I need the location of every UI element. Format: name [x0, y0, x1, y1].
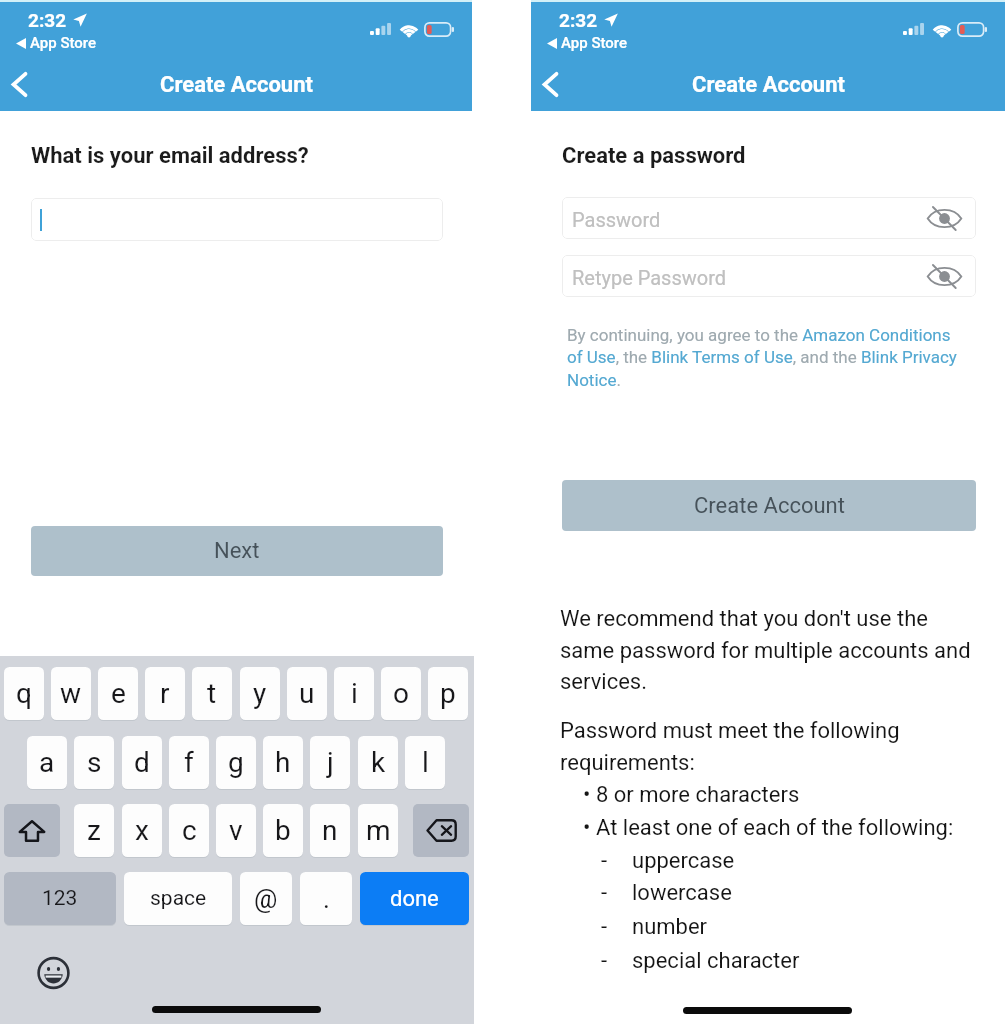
button[interactable]: z: [74, 804, 114, 857]
staticText: -: [601, 948, 608, 974]
staticText: q: [16, 677, 32, 710]
button[interactable]: e: [98, 667, 138, 720]
staticText: Retype Password: [572, 266, 727, 289]
staticText: •: [583, 815, 591, 841]
staticText: space: [150, 886, 207, 911]
staticText: special character: [632, 948, 800, 974]
staticText: number: [632, 914, 708, 940]
staticText: -: [601, 880, 608, 906]
button[interactable]: v: [216, 804, 256, 857]
staticText: o: [393, 677, 409, 710]
button[interactable]: Emoji keyboard: [37, 956, 70, 990]
button[interactable]: Show password: [920, 258, 968, 295]
staticText: c: [182, 814, 197, 847]
button[interactable]: Back: [0, 62, 38, 106]
staticText: uppercase: [632, 848, 735, 874]
staticText: i: [351, 677, 358, 710]
staticText: 2:32: [559, 9, 598, 31]
staticText: w: [60, 677, 82, 710]
button[interactable]: Backspace: [413, 804, 469, 857]
staticText: g: [228, 746, 244, 779]
button[interactable]: space: [124, 872, 232, 925]
button[interactable]: 123: [4, 872, 116, 925]
staticText: done: [390, 886, 439, 912]
staticText: -: [601, 914, 608, 940]
staticText: -: [601, 848, 608, 874]
button[interactable]: Retype Password: [562, 255, 976, 297]
staticText: We recommend that you don't use the same…: [560, 606, 978, 694]
button[interactable]: m: [358, 804, 398, 857]
staticText: z: [87, 814, 101, 847]
button[interactable]: q: [4, 667, 44, 720]
staticText: u: [299, 677, 315, 710]
staticText: x: [135, 814, 149, 847]
button[interactable]: r: [145, 667, 185, 720]
staticText: lowercase: [632, 880, 732, 906]
staticText: .: [323, 884, 330, 914]
button[interactable]: a: [27, 736, 67, 789]
button[interactable]: Back: [531, 62, 569, 106]
staticText: k: [371, 746, 386, 779]
staticText: s: [87, 746, 102, 779]
button[interactable]: b: [263, 804, 303, 857]
button[interactable]: f: [169, 736, 209, 789]
staticText: @: [254, 884, 278, 914]
staticText: Password must meet the following require…: [560, 718, 978, 775]
staticText: n: [322, 814, 338, 847]
staticText: App Store: [561, 34, 628, 52]
staticText: 2:32: [28, 9, 67, 31]
button[interactable]: h: [263, 736, 303, 789]
staticText: p: [440, 677, 456, 710]
button[interactable]: @: [240, 872, 292, 925]
button[interactable]: y: [240, 667, 280, 720]
button[interactable]: d: [122, 736, 162, 789]
button[interactable]: Password: [562, 197, 976, 239]
staticText: App Store: [30, 34, 97, 52]
staticText: Password: [572, 208, 661, 231]
staticText: Next: [214, 538, 260, 564]
staticText: What is your email address?: [31, 143, 309, 169]
button[interactable]: done: [360, 872, 469, 925]
button[interactable]: t: [192, 667, 232, 720]
button[interactable]: Show password: [920, 200, 968, 237]
button[interactable]: k: [358, 736, 398, 789]
button[interactable]: Create Account: [562, 480, 976, 531]
staticText: Create Account: [694, 493, 845, 519]
button[interactable]: j: [310, 736, 350, 789]
button[interactable]: Shift: [4, 804, 60, 857]
staticText: y: [253, 677, 267, 710]
staticText: r: [160, 677, 170, 710]
button[interactable]: g: [216, 736, 256, 789]
button[interactable]: i: [334, 667, 374, 720]
button[interactable]: s: [74, 736, 114, 789]
button[interactable]: p: [428, 667, 468, 720]
staticText: Create Account: [692, 72, 845, 98]
staticText: 123: [42, 886, 78, 911]
button[interactable]: u: [287, 667, 327, 720]
button[interactable]: n: [310, 804, 350, 857]
staticText: Create a password: [562, 143, 746, 169]
button[interactable]: .: [300, 872, 352, 925]
staticText: f: [184, 746, 194, 779]
staticText: a: [39, 746, 55, 779]
staticText: b: [275, 814, 291, 847]
staticText: v: [229, 814, 243, 847]
button[interactable]: c: [169, 804, 209, 857]
button[interactable]: o: [381, 667, 421, 720]
staticText: j: [327, 746, 334, 779]
button[interactable]: l: [405, 736, 445, 789]
staticText: 8 or more characters: [596, 782, 800, 808]
button[interactable]: Next: [31, 526, 443, 576]
button[interactable]: Email address input field: [31, 198, 443, 241]
staticText: m: [366, 814, 391, 847]
staticText: Create Account: [160, 72, 313, 98]
button[interactable]: w: [51, 667, 91, 720]
staticText: l: [422, 746, 429, 779]
staticText: h: [275, 746, 291, 779]
staticText: t: [207, 677, 217, 710]
staticText: d: [134, 746, 150, 779]
button[interactable]: x: [122, 804, 162, 857]
staticText: e: [111, 677, 126, 710]
staticText: At least one of each of the following:: [596, 815, 954, 841]
staticText: By continuing, you agree to the Amazon C…: [567, 325, 969, 390]
